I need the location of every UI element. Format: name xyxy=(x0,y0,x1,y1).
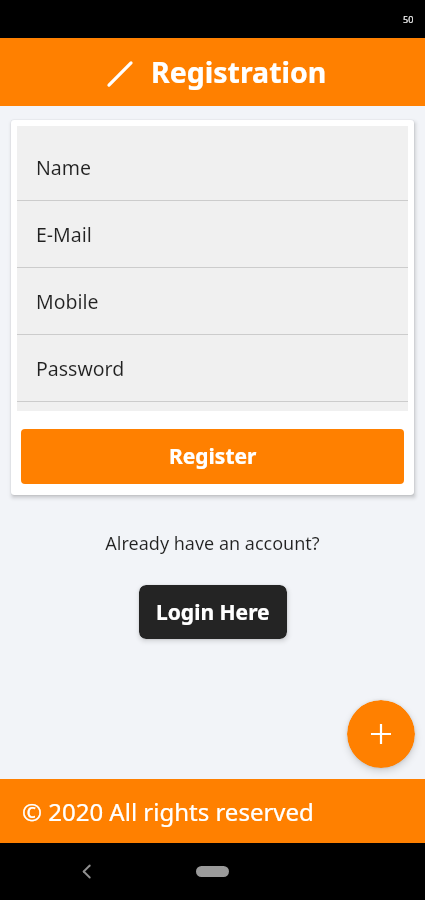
button[interactable]: Add xyxy=(347,700,415,768)
staticText: Mobile xyxy=(36,288,99,315)
button[interactable]: Login Here xyxy=(139,585,287,639)
staticText: Login Here xyxy=(156,598,270,627)
button[interactable]: Mobile xyxy=(17,268,408,334)
staticText: Already have an account? xyxy=(0,531,425,556)
staticText: © 2020 All rights reserved xyxy=(22,795,314,828)
staticText: Register xyxy=(169,442,257,471)
button[interactable]: Password xyxy=(17,335,408,401)
staticText: 50 xyxy=(403,13,414,25)
staticText: Name xyxy=(36,154,91,181)
button[interactable]: Name xyxy=(17,135,408,200)
button[interactable]: Register xyxy=(21,429,404,484)
button[interactable]: E-Mail xyxy=(17,201,408,267)
staticText: Registration xyxy=(151,53,327,92)
staticText: E-Mail xyxy=(36,221,92,248)
staticText: Password xyxy=(36,355,125,382)
